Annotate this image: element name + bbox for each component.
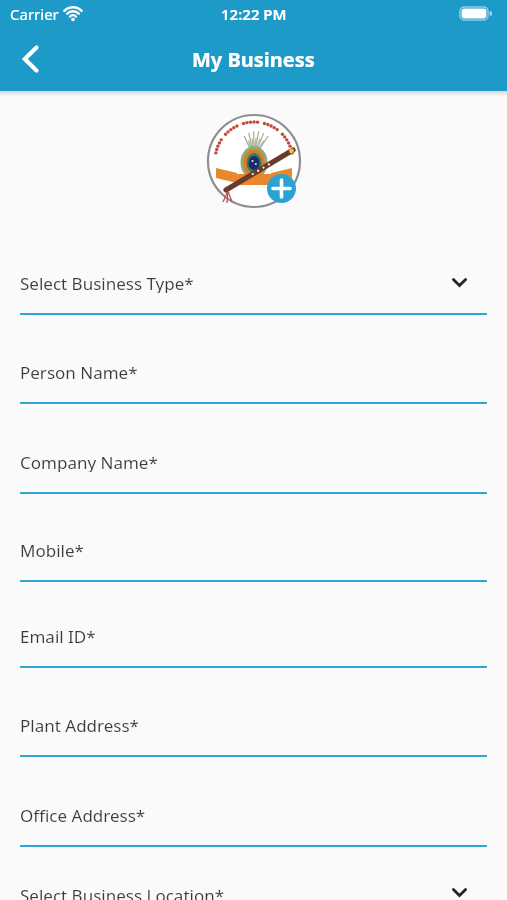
staticText: Plant Address* [20, 714, 139, 735]
button[interactable]: Email ID* [0, 625, 507, 714]
button[interactable]: Select Business Location* [0, 884, 507, 900]
button[interactable]: Plant Address* [0, 714, 507, 804]
button[interactable] [205, 112, 303, 210]
button[interactable] [12, 39, 48, 79]
staticText: Mobile* [20, 539, 84, 560]
button[interactable]: Select Business Type* [0, 272, 507, 361]
button[interactable]: Company Name* [0, 451, 507, 539]
staticText: Office Address* [20, 804, 146, 825]
staticText: Company Name* [20, 451, 158, 472]
staticText: Email ID* [20, 625, 96, 646]
button[interactable] [267, 174, 296, 203]
staticText: My Business [192, 46, 315, 73]
staticText: Person Name* [20, 361, 138, 382]
staticText: 12:22 PM [221, 4, 287, 24]
staticText: Select Business Type* [20, 272, 194, 293]
staticText: Carrier [10, 4, 59, 24]
button[interactable]: Mobile* [0, 539, 507, 625]
staticText: Select Business Location* [20, 884, 225, 900]
button[interactable]: Office Address* [0, 804, 507, 884]
button[interactable]: Person Name* [0, 361, 507, 451]
